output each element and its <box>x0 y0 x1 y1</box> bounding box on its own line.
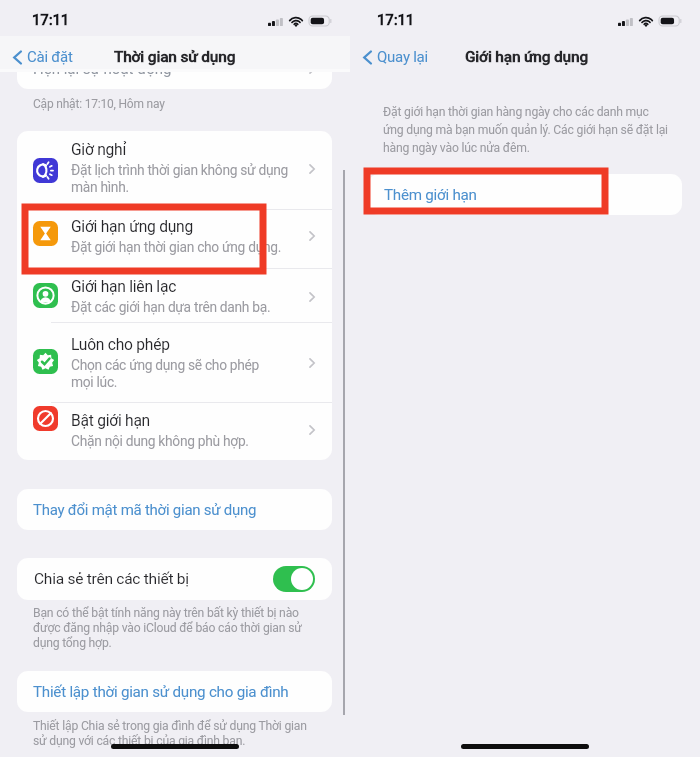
button[interactable]: Thêm giới hạn <box>368 174 682 215</box>
button[interactable]: Quay lại <box>361 45 430 69</box>
staticText: Cập nhật: 17:10, Hôm nay <box>33 97 165 111</box>
staticText: Bật giới hạn <box>71 412 150 430</box>
staticText: Giới hạn ứng dụng <box>465 48 589 66</box>
staticText: Bạn có thể bật tính năng này trên bất kỳ… <box>33 606 302 650</box>
staticText: Thêm giới hạn <box>384 186 477 204</box>
staticText: Luôn cho phép <box>71 336 170 354</box>
staticText: Chia sẻ trên các thiết bị <box>34 570 189 588</box>
button[interactable] <box>17 268 332 322</box>
staticText: Đặt giới hạn thời gian hàng ngày cho các… <box>383 105 668 155</box>
button[interactable]: Thay đổi mật mã thời gian sử dụng <box>17 489 332 530</box>
staticText: Hẹn lại sự hoạt động <box>33 60 172 78</box>
staticText: Giờ nghỉ <box>71 141 127 159</box>
staticText: 17:11 <box>32 11 70 29</box>
button[interactable]: Thiết lập thời gian sử dụng cho gia đình <box>17 671 332 712</box>
staticText: Đặt giới hạn thời gian cho ứng dụng. <box>71 239 282 255</box>
button[interactable]: Share across devices toggle <box>273 566 315 592</box>
staticText: Đặt lịch trình thời gian không sử dụng m… <box>71 162 289 195</box>
staticText: Giới hạn ứng dụng <box>71 218 193 236</box>
staticText: Chọn các ứng dụng sẽ cho phép mọi lúc. <box>71 357 260 390</box>
button[interactable] <box>17 322 332 402</box>
staticText: Thời gian sử dụng <box>114 48 236 66</box>
button[interactable]: Chia sẻ trên các thiết bị <box>17 558 332 600</box>
staticText: Đặt các giới hạn dựa trên danh bạ. <box>71 299 271 315</box>
staticText: Giới hạn liên lạc <box>71 278 177 296</box>
staticText: Thiết lập thời gian sử dụng cho gia đình <box>33 683 289 701</box>
button[interactable]: Cài đặt <box>11 45 75 69</box>
button[interactable] <box>17 209 332 268</box>
button[interactable] <box>17 131 332 209</box>
button[interactable] <box>17 402 332 460</box>
staticText: Thay đổi mật mã thời gian sử dụng <box>33 501 257 519</box>
staticText: Quay lại <box>377 48 428 66</box>
staticText: Chặn nội dung không phù hợp. <box>71 433 249 449</box>
staticText: Thiết lập Chia sẻ trong gia đình để sử d… <box>33 719 307 748</box>
staticText: Cài đặt <box>27 48 73 66</box>
staticText: 17:11 <box>377 11 415 29</box>
